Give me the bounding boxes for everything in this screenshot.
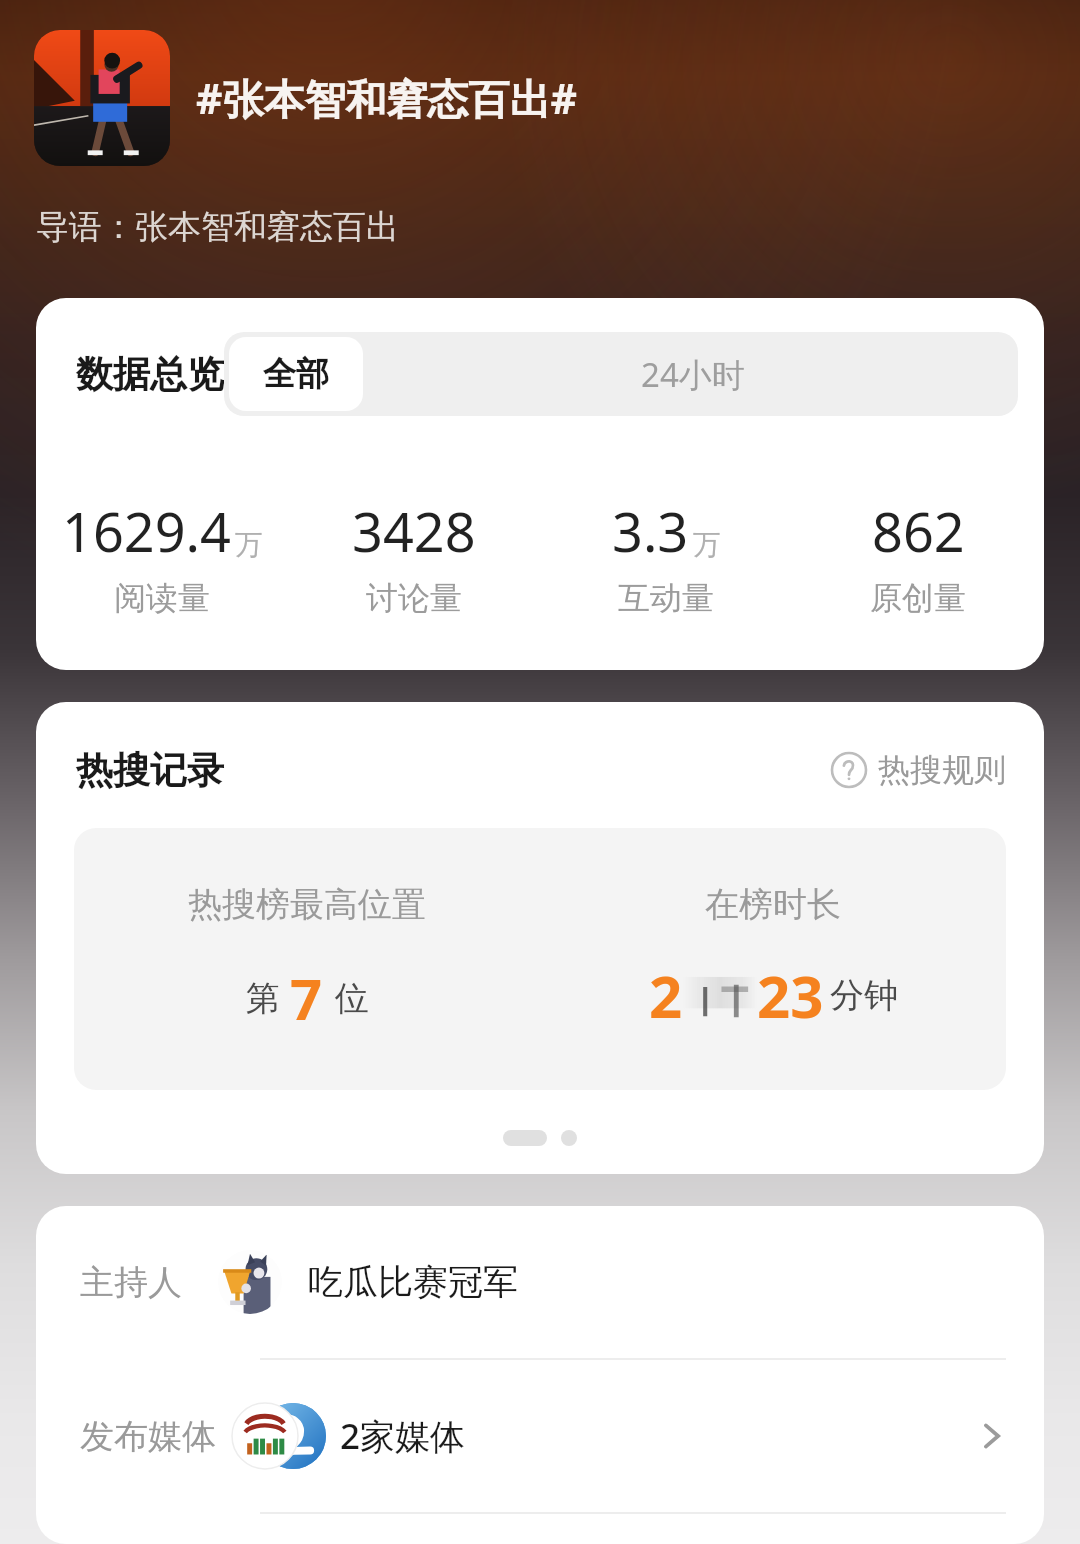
- staticText: 第: [246, 977, 280, 1020]
- staticText: 分钟: [830, 974, 898, 1017]
- staticText: #张本智和窘态百出#: [196, 70, 577, 126]
- button[interactable]: 862: [792, 494, 1044, 618]
- staticText: 万: [235, 527, 263, 562]
- staticText: 万: [693, 527, 721, 562]
- staticText: 吃瓜比赛冠军: [308, 1260, 518, 1304]
- staticText: 位: [335, 977, 369, 1020]
- staticText: 主持人: [80, 1261, 182, 1304]
- button[interactable]: 主持人: [36, 1206, 1044, 1358]
- staticText: 在榜时长: [705, 883, 841, 926]
- other: 热搜规则说明: [830, 751, 868, 789]
- staticText: 23: [757, 956, 824, 1035]
- other: 发布媒体: [230, 1403, 326, 1469]
- staticText: 24小时: [641, 352, 745, 397]
- staticText: 1629.4: [62, 494, 231, 568]
- staticText: 数据总览: [76, 351, 224, 398]
- button[interactable]: 24小时: [368, 332, 1018, 416]
- staticText: 互动量: [618, 578, 714, 618]
- button[interactable]: 3428: [288, 494, 540, 618]
- button[interactable]: 查看发布媒体: [970, 1414, 1014, 1458]
- staticText: 原创量: [870, 578, 966, 618]
- button[interactable]: 全部: [229, 337, 363, 411]
- staticText: 讨论量: [366, 578, 462, 618]
- staticText: 2家媒体: [340, 1412, 466, 1460]
- staticText: 发布媒体: [80, 1415, 216, 1458]
- button[interactable]: 3.3: [540, 494, 792, 618]
- staticText: 3.3: [612, 494, 689, 568]
- button[interactable]: 发布媒体: [36, 1360, 1044, 1512]
- staticText: 热搜记录: [76, 747, 224, 794]
- staticText: 2: [649, 956, 683, 1035]
- staticText: 3428: [352, 494, 476, 568]
- staticText: 862: [872, 494, 965, 568]
- staticText: 导语：张本智和窘态百出: [36, 206, 399, 248]
- staticText: 热搜规则: [878, 750, 1006, 790]
- button[interactable]: 热搜规则说明: [826, 744, 1010, 796]
- staticText: 阅读量: [114, 578, 210, 618]
- staticText: 全部: [263, 353, 329, 395]
- other: 主持人头像: [218, 1250, 282, 1314]
- staticText: 热搜榜最高位置: [188, 883, 426, 926]
- button[interactable]: 1629.4: [36, 494, 288, 618]
- button[interactable]: 话题封面: [34, 30, 170, 166]
- staticText: 7: [290, 960, 323, 1036]
